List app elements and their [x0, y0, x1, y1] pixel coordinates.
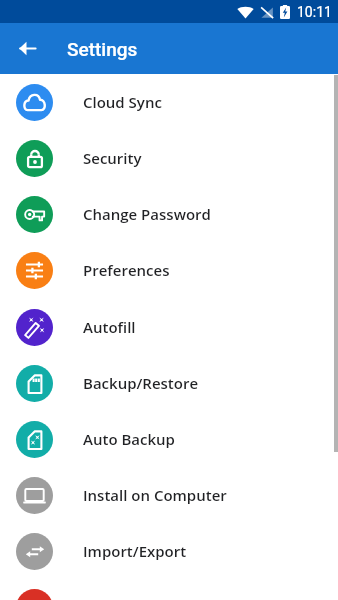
staticText: Autofill: [83, 317, 136, 337]
staticText: Change Password: [83, 204, 211, 224]
button[interactable]: Auto Backup: [0, 411, 338, 467]
button[interactable]: Preferences: [0, 242, 338, 298]
button[interactable]: Back: [0, 23, 54, 74]
staticText: Security: [83, 148, 142, 168]
button[interactable]: Install on Computer: [0, 467, 338, 523]
button[interactable]: Cloud Sync: [0, 74, 338, 130]
staticText: Preferences: [83, 260, 170, 280]
button[interactable]: Change Password: [0, 186, 338, 242]
staticText: Cloud Sync: [83, 92, 162, 112]
staticText: Install on Computer: [83, 485, 227, 505]
staticText: Settings: [67, 38, 138, 60]
button[interactable]: Autofill: [0, 299, 338, 355]
staticText: 10:11: [297, 4, 332, 20]
button[interactable]: Security: [0, 130, 338, 186]
button[interactable]: Import/Export: [0, 523, 338, 579]
button[interactable]: Delete Everything: [0, 579, 338, 600]
staticText: Backup/Restore: [83, 373, 199, 393]
staticText: Import/Export: [83, 541, 187, 561]
button[interactable]: Backup/Restore: [0, 355, 338, 411]
staticText: Auto Backup: [83, 429, 175, 449]
